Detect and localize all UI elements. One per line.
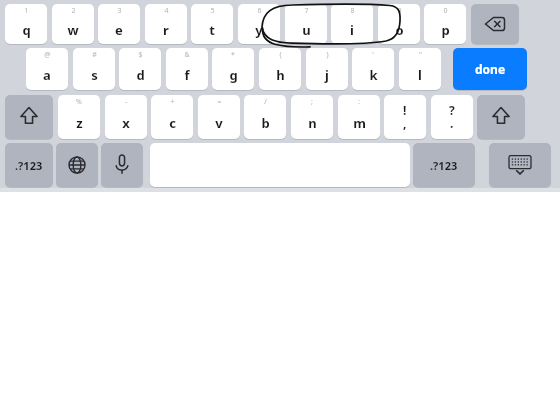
staticText: b — [261, 114, 270, 132]
staticText: u — [302, 21, 311, 39]
staticText: + — [170, 97, 175, 107]
staticText: q — [22, 21, 31, 39]
staticText: ' — [372, 50, 374, 60]
staticText: 5 — [210, 6, 215, 16]
button[interactable]: # — [73, 48, 115, 90]
staticText: x — [122, 114, 130, 132]
staticText: d — [136, 66, 145, 84]
staticText: 4 — [164, 6, 169, 16]
button[interactable]: 3 — [98, 4, 140, 44]
staticText: j — [325, 66, 329, 84]
button[interactable]: + — [151, 95, 193, 139]
staticText: , — [403, 115, 407, 131]
button[interactable]: Shift — [477, 95, 525, 139]
button[interactable]: ) — [306, 48, 348, 90]
button[interactable]: & — [166, 48, 208, 90]
staticText: = — [217, 97, 222, 107]
staticText: n — [308, 114, 317, 132]
staticText: - — [125, 97, 128, 107]
button[interactable]: 1 — [5, 4, 47, 44]
staticText: ; — [311, 97, 313, 107]
staticText: e — [115, 21, 123, 39]
button[interactable]: 4 — [145, 4, 187, 44]
button[interactable]: ' — [352, 48, 394, 90]
button[interactable]: ! — [384, 95, 426, 139]
staticText: z — [76, 114, 83, 132]
staticText: k — [369, 66, 378, 84]
button[interactable]: 0 — [424, 4, 466, 44]
staticText: . — [450, 115, 454, 131]
button[interactable]: 8 — [331, 4, 373, 44]
button[interactable]: Hide keyboard — [489, 143, 551, 187]
button[interactable]: % — [58, 95, 100, 139]
staticText: t — [209, 21, 215, 39]
staticText: m — [353, 114, 366, 132]
button[interactable]: = — [198, 95, 240, 139]
staticText: s — [91, 66, 98, 84]
button[interactable]: $ — [119, 48, 161, 90]
staticText: 0 — [443, 6, 448, 16]
staticText: 1 — [24, 6, 29, 16]
staticText: $ — [138, 50, 143, 60]
button[interactable]: 7 — [285, 4, 327, 44]
button[interactable]: : — [338, 95, 380, 139]
staticText: .?123 — [15, 158, 43, 173]
staticText: l — [418, 66, 422, 84]
staticText: c — [169, 114, 176, 132]
staticText: : — [358, 97, 360, 107]
staticText: 6 — [257, 6, 262, 16]
button[interactable]: @ — [26, 48, 68, 90]
button[interactable]: * — [212, 48, 254, 90]
staticText: i — [350, 21, 354, 39]
button[interactable]: ? — [431, 95, 473, 139]
staticText: done — [475, 61, 506, 77]
staticText: o — [395, 21, 404, 39]
staticText: 3 — [117, 6, 122, 16]
button[interactable]: 6 — [238, 4, 280, 44]
button[interactable]: ; — [291, 95, 333, 139]
staticText: @ — [44, 50, 51, 60]
staticText: r — [163, 21, 169, 39]
button[interactable]: .?123 — [413, 143, 475, 187]
button[interactable]: 2 — [52, 4, 94, 44]
staticText: p — [441, 21, 450, 39]
staticText: ( — [279, 50, 282, 60]
staticText: 2 — [71, 6, 76, 16]
button[interactable]: 9 — [378, 4, 420, 44]
staticText: ) — [326, 50, 329, 60]
button[interactable]: ( — [259, 48, 301, 90]
staticText: # — [92, 50, 97, 60]
button[interactable]: Shift — [5, 95, 53, 139]
staticText: v — [215, 114, 223, 132]
button[interactable]: Dictate — [101, 143, 143, 187]
button[interactable]: " — [399, 48, 441, 90]
staticText: ! — [403, 102, 407, 118]
button[interactable]: / — [244, 95, 286, 139]
staticText: * — [231, 50, 235, 60]
staticText: 9 — [397, 6, 402, 16]
staticText: % — [76, 97, 82, 107]
staticText: ? — [449, 102, 455, 118]
staticText: / — [264, 97, 267, 107]
button[interactable]: 5 — [191, 4, 233, 44]
staticText: .?123 — [430, 158, 458, 173]
staticText: 8 — [350, 6, 355, 16]
staticText: 7 — [304, 6, 309, 16]
staticText: w — [67, 21, 79, 39]
staticText: a — [43, 66, 51, 84]
button[interactable]: Backspace — [471, 4, 519, 44]
staticText: & — [184, 50, 190, 60]
button[interactable]: - — [105, 95, 147, 139]
staticText: g — [229, 66, 238, 84]
button[interactable]: .?123 — [5, 143, 53, 187]
staticText: " — [419, 50, 422, 60]
staticText: h — [276, 66, 285, 84]
button[interactable]: Change keyboard language — [56, 143, 98, 187]
button[interactable]: done — [453, 48, 527, 90]
staticText: f — [184, 66, 190, 84]
staticText: y — [255, 21, 263, 39]
